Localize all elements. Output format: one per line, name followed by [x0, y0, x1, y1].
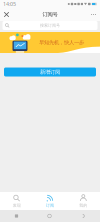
staticText: 新增订阅: [40, 69, 60, 75]
staticText: 搜索订阅号: [40, 23, 60, 28]
staticText: 订阅: [46, 203, 54, 208]
button[interactable]: 新增订阅: [4, 67, 96, 76]
button[interactable]: 早知先机，快人一步: [0, 32, 100, 53]
button[interactable]: More options: [87, 8, 100, 21]
button[interactable]: 订阅: [33, 192, 67, 210]
button[interactable]: Home: [33, 210, 66, 222]
staticText: 我的: [79, 203, 87, 208]
button[interactable]: 我的: [67, 192, 100, 210]
button[interactable]: 发现: [0, 192, 33, 210]
staticText: 订阅号: [42, 11, 57, 18]
button[interactable]: Recents: [0, 210, 33, 222]
staticText: 14:05: [3, 0, 16, 8]
button[interactable]: Close: [0, 8, 13, 21]
staticText: 早知先机，快人一步: [39, 39, 84, 46]
button[interactable]: Back: [66, 210, 100, 222]
staticText: 发现: [13, 203, 21, 208]
button[interactable]: 搜索订阅号: [2, 21, 97, 30]
